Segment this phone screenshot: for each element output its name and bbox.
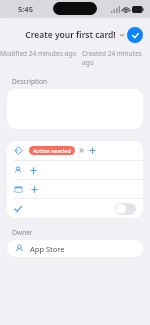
staticText: Create your first card! xyxy=(25,29,116,41)
button[interactable]: Add xyxy=(29,166,38,175)
staticText: Modified 24 minutes ago xyxy=(0,49,77,58)
button[interactable]: Add xyxy=(30,185,39,194)
button[interactable]: Remove tag xyxy=(78,147,85,154)
button[interactable]: Create your first card! xyxy=(25,29,125,41)
button[interactable]: Add xyxy=(7,161,143,179)
staticText: 5:45 xyxy=(18,4,33,14)
button[interactable]: Add xyxy=(88,146,97,155)
button[interactable]: App Store xyxy=(7,240,143,257)
button[interactable]: Add xyxy=(7,180,143,198)
staticText: App Store xyxy=(30,244,65,254)
staticText: Action needed xyxy=(33,147,71,154)
button[interactable]: Action needed xyxy=(7,141,143,160)
button[interactable]: Toggle xyxy=(7,199,143,218)
button[interactable]: Toggle xyxy=(115,203,136,215)
staticText: Created 24 minutes ago xyxy=(82,49,150,67)
staticText: Description xyxy=(12,77,47,86)
staticText: Owner xyxy=(12,228,33,237)
button[interactable]: Done xyxy=(127,27,143,43)
